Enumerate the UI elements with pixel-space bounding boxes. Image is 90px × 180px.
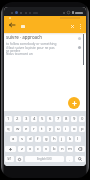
button[interactable]: m — [67, 146, 73, 152]
button[interactable]: g — [43, 136, 49, 142]
button[interactable]: 9 — [71, 116, 77, 122]
staticText: 6 — [49, 116, 52, 122]
staticText: y — [49, 126, 52, 132]
button[interactable]: 4 — [31, 116, 37, 122]
button[interactable]: Backspace — [75, 146, 85, 152]
button[interactable]: b — [51, 146, 57, 152]
button[interactable]: Emoji — [16, 156, 23, 162]
staticText: e — [25, 126, 28, 132]
button[interactable]: j — [59, 136, 65, 142]
button[interactable]: k — [67, 136, 73, 142]
staticText: t — [41, 126, 43, 132]
staticText: g — [45, 136, 48, 142]
staticText: w — [16, 126, 20, 132]
staticText: to follow somebody or something il faut … — [6, 42, 57, 56]
button[interactable]: d — [27, 136, 33, 142]
staticText: 3 — [25, 116, 28, 122]
button[interactable]: 7 — [55, 116, 61, 122]
staticText: f — [37, 136, 39, 142]
button[interactable]: o — [71, 126, 77, 132]
staticText: 7 — [57, 116, 60, 122]
staticText: k — [69, 136, 72, 142]
button[interactable]: Back — [7, 20, 17, 30]
button[interactable]: x — [27, 146, 33, 152]
staticText: 0 — [81, 116, 84, 122]
staticText: !#1 — [7, 157, 12, 161]
staticText: n — [61, 146, 64, 152]
staticText: suivre · approach — [6, 34, 42, 40]
staticText: 8 — [65, 116, 68, 122]
button[interactable]: 6 — [47, 116, 53, 122]
button[interactable]: l — [75, 136, 81, 142]
staticText: 2 — [16, 116, 19, 122]
staticText: a — [12, 136, 15, 142]
button[interactable]: Shift — [5, 146, 16, 152]
button[interactable]: Period — [66, 156, 73, 162]
button[interactable]: t — [39, 126, 45, 132]
button[interactable]: q — [5, 126, 12, 132]
button[interactable]: More options — [75, 21, 85, 31]
staticText: l — [77, 136, 79, 142]
button[interactable]: 8 — [63, 116, 69, 122]
button[interactable]: Clear search — [67, 21, 77, 31]
staticText: x — [29, 146, 32, 152]
button[interactable]: Search — [75, 156, 85, 162]
button[interactable]: r — [31, 126, 37, 132]
button[interactable]: v — [43, 146, 49, 152]
staticText: r — [33, 126, 35, 132]
button[interactable]: Space — [25, 156, 64, 162]
button[interactable]: p — [79, 126, 85, 132]
staticText: v — [45, 146, 48, 152]
staticText: 5 — [41, 116, 44, 122]
staticText: u — [57, 126, 60, 132]
button[interactable]: i — [63, 126, 69, 132]
staticText: c — [37, 146, 40, 152]
staticText: j — [61, 136, 63, 142]
staticText: p — [81, 126, 84, 132]
staticText: q — [7, 126, 10, 132]
staticText: English (UK) — [37, 157, 52, 161]
staticText: d — [29, 136, 32, 142]
staticText: . — [69, 157, 71, 162]
staticText: z — [21, 146, 23, 152]
button[interactable]: 0 — [79, 116, 85, 122]
button[interactable]: c — [35, 146, 41, 152]
button[interactable]: 5 — [39, 116, 45, 122]
staticText: 4 — [33, 116, 36, 122]
staticText: 9 — [73, 116, 76, 122]
button[interactable]: h — [51, 136, 57, 142]
button[interactable]: e — [23, 126, 29, 132]
button[interactable]: u — [55, 126, 61, 132]
button[interactable]: Add word — [68, 97, 80, 109]
staticText: i — [65, 126, 67, 132]
button[interactable]: 3 — [23, 116, 29, 122]
staticText: s — [21, 136, 24, 142]
staticText: b — [53, 146, 56, 152]
button[interactable]: z — [18, 146, 25, 152]
button[interactable]: 1 — [5, 116, 12, 122]
button[interactable]: n — [59, 146, 65, 152]
button[interactable]: s — [19, 136, 25, 142]
button[interactable]: 2 — [14, 116, 21, 122]
button[interactable]: f — [35, 136, 41, 142]
staticText: h — [53, 136, 56, 142]
button[interactable]: Symbols — [5, 156, 14, 162]
button[interactable]: w — [14, 126, 21, 132]
button[interactable]: y — [47, 126, 53, 132]
staticText: m — [68, 146, 72, 152]
button[interactable]: a — [10, 136, 17, 142]
staticText: o — [73, 126, 76, 132]
staticText: 1 — [7, 116, 10, 122]
